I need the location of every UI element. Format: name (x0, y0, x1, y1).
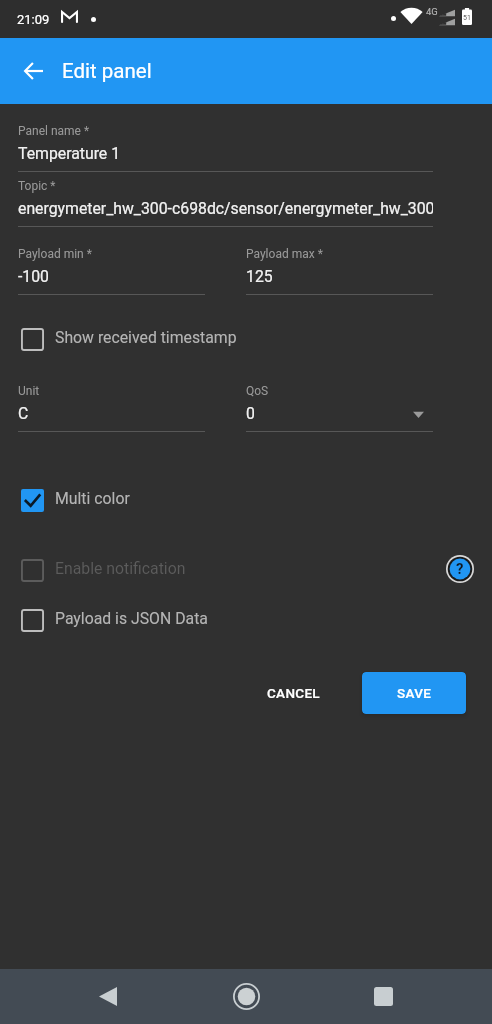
button[interactable]: SAVE (362, 672, 466, 714)
button[interactable]: Home (208, 969, 284, 1024)
staticText: -100 (18, 267, 49, 286)
button[interactable]: Navigate back (0, 38, 66, 104)
button[interactable]: Panel name * (18, 124, 433, 172)
staticText: Panel name * (18, 124, 90, 138)
staticText: Topic * (18, 179, 56, 193)
button[interactable]: Help (446, 555, 474, 583)
staticText: 21:09 (17, 12, 50, 27)
staticText: Multi color (55, 489, 130, 508)
button[interactable]: Payload is JSON Data (0, 600, 492, 640)
button[interactable]: QoS (246, 384, 433, 432)
staticText: Unit (18, 384, 40, 398)
staticText: Payload is JSON Data (55, 609, 208, 628)
staticText: Payload min * (18, 247, 92, 261)
staticText: SAVE (397, 685, 432, 701)
button[interactable]: Topic * (18, 179, 433, 227)
button[interactable]: Back (70, 969, 145, 1024)
button[interactable]: Multi color (0, 480, 492, 520)
button[interactable]: Payload max * (246, 247, 433, 295)
staticText: 4G (426, 6, 438, 17)
button[interactable]: Enable notification (0, 550, 492, 590)
staticText: Edit panel (62, 59, 152, 83)
button[interactable]: Recent apps (345, 969, 421, 1024)
staticText: 0 (246, 404, 255, 423)
staticText: 51 (463, 14, 471, 22)
button[interactable]: Payload min * (18, 247, 205, 295)
staticText: energymeter_hw_300-c698dc/sensor/energym… (18, 199, 433, 218)
staticText: Temperature 1 (18, 144, 121, 163)
button[interactable]: Show received timestamp (0, 319, 492, 359)
staticText: ? (456, 560, 464, 578)
button[interactable]: Unit (18, 384, 205, 432)
button[interactable]: CANCEL (250, 672, 336, 714)
staticText: CANCEL (267, 685, 320, 701)
staticText: QoS (246, 384, 269, 398)
staticText: Show received timestamp (55, 328, 237, 347)
staticText: C (18, 404, 29, 423)
staticText: Payload max * (246, 247, 323, 261)
staticText: Enable notification (55, 559, 186, 578)
staticText: 125 (246, 267, 273, 286)
